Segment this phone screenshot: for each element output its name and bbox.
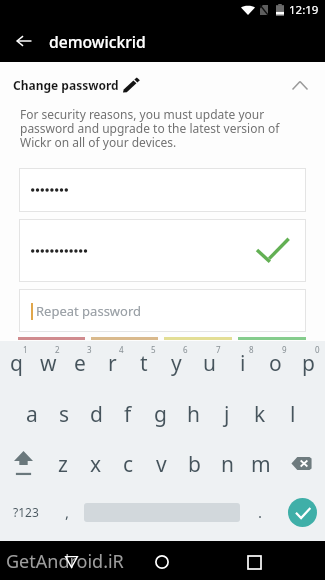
button[interactable]: .	[240, 486, 280, 538]
staticText: ,	[65, 502, 70, 522]
staticText: u	[203, 349, 216, 378]
button[interactable]: Change password	[0, 74, 325, 96]
staticText: m	[251, 450, 271, 479]
button[interactable]: ?123	[0, 486, 51, 538]
staticText: 2	[55, 344, 60, 355]
button[interactable]: 0	[292, 341, 325, 388]
staticText: j	[224, 400, 230, 429]
staticText: v	[156, 450, 167, 479]
staticText: x	[90, 450, 102, 479]
staticText: r	[108, 349, 117, 378]
staticText: q	[10, 349, 23, 378]
button[interactable]: v	[145, 438, 178, 489]
staticText: 3	[87, 344, 92, 355]
button[interactable]: 6	[160, 341, 193, 388]
button[interactable]: z	[47, 438, 79, 489]
staticText: i	[240, 349, 246, 378]
button[interactable]: x	[79, 438, 112, 489]
button[interactable]: f	[112, 388, 144, 438]
button[interactable]: Backspace	[277, 438, 325, 489]
button[interactable]: h	[177, 388, 210, 438]
button[interactable]: Repeat password	[19, 289, 306, 332]
staticText: 5	[151, 344, 156, 355]
staticText: t	[140, 349, 148, 378]
button[interactable]: j	[210, 388, 243, 438]
staticText: k	[254, 400, 266, 429]
staticText: e	[74, 349, 86, 378]
button[interactable]: k	[243, 388, 276, 438]
staticText: n	[221, 450, 234, 479]
staticText: l	[290, 400, 296, 429]
button[interactable]: Collapse	[283, 74, 317, 96]
staticText: demowickrid	[49, 31, 146, 52]
staticText: Change password	[13, 77, 119, 93]
button[interactable]: 2	[32, 341, 64, 388]
staticText: For security reasons, you must update yo…	[20, 106, 280, 151]
button[interactable]: a	[16, 388, 48, 438]
staticText: 7	[216, 344, 221, 355]
staticText: 8	[249, 344, 254, 355]
button[interactable]: s	[48, 388, 80, 438]
button[interactable]: l	[276, 388, 309, 438]
staticText: Repeat password	[36, 302, 142, 320]
staticText: p	[302, 349, 315, 378]
button[interactable]: ,	[51, 486, 84, 538]
staticText: w	[40, 349, 57, 378]
button[interactable]: Done	[280, 486, 325, 538]
staticText: 0	[315, 344, 320, 355]
staticText: 9	[282, 344, 287, 355]
staticText: o	[269, 349, 282, 378]
staticText: .	[258, 502, 263, 522]
staticText: g	[154, 400, 167, 429]
staticText: a	[26, 400, 38, 429]
button[interactable]	[19, 168, 306, 212]
button[interactable]: g	[144, 388, 177, 438]
staticText: d	[90, 400, 103, 429]
staticText: 1	[23, 344, 28, 355]
button[interactable]: m	[244, 438, 277, 489]
staticText: b	[188, 450, 201, 479]
staticText: y	[171, 349, 182, 378]
staticText: f	[124, 400, 132, 429]
button[interactable]: 7	[193, 341, 226, 388]
button[interactable]: 5	[128, 341, 160, 388]
button[interactable]: Shift	[0, 438, 47, 489]
staticText: s	[59, 400, 70, 429]
button[interactable]: Recents	[239, 547, 269, 577]
staticText: z	[58, 450, 68, 479]
button[interactable]: 8	[226, 341, 259, 388]
staticText: 6	[183, 344, 188, 355]
button[interactable]: 3	[64, 341, 96, 388]
staticText: c	[123, 450, 134, 479]
button[interactable]: Back	[0, 20, 48, 62]
button[interactable]	[19, 219, 306, 282]
staticText: 12:19	[289, 2, 319, 18]
button[interactable]: d	[80, 388, 112, 438]
staticText: 4	[119, 344, 124, 355]
button[interactable]: 9	[259, 341, 292, 388]
staticText: h	[187, 400, 200, 429]
staticText: GetAndroid.iR	[6, 549, 124, 574]
button[interactable]: Home	[147, 547, 177, 577]
button[interactable]: Back	[56, 547, 86, 577]
button[interactable]: b	[178, 438, 211, 489]
button[interactable]: n	[211, 438, 244, 489]
staticText: ?123	[13, 504, 39, 520]
button[interactable]: c	[112, 438, 145, 489]
button[interactable]: 4	[96, 341, 128, 388]
button[interactable]: 1	[0, 341, 32, 388]
